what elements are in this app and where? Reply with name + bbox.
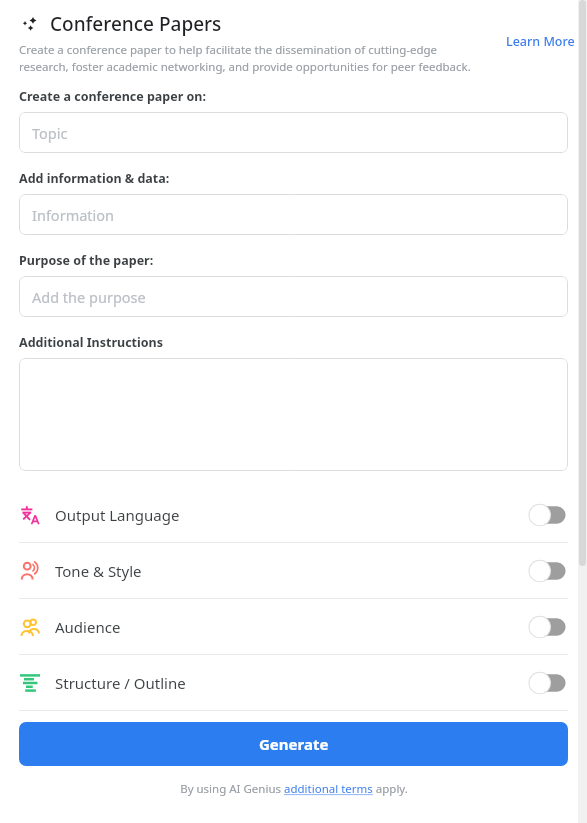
- staticText: Information: [32, 205, 115, 225]
- staticText: Create a conference paper on:: [19, 88, 207, 105]
- button[interactable]: Tone & Style: [0, 543, 587, 598]
- staticText: Topic: [32, 123, 68, 143]
- staticText: Tone & Style: [55, 561, 142, 581]
- button[interactable]: Audience: [0, 599, 587, 654]
- staticText: Purpose of the paper:: [19, 252, 154, 269]
- staticText: Additional Instructions: [19, 334, 163, 351]
- staticText: Output Language: [55, 505, 180, 525]
- button[interactable]: Information: [19, 194, 568, 235]
- button[interactable]: [19, 358, 568, 471]
- button[interactable]: Topic: [19, 112, 568, 153]
- staticText: Learn More: [506, 33, 575, 50]
- button[interactable]: Toggle: [528, 559, 568, 583]
- staticText: Audience: [55, 617, 121, 637]
- staticText: Conference Papers: [50, 11, 222, 37]
- staticText: By using AI Genius additional terms appl…: [180, 781, 408, 797]
- staticText: Generate: [259, 734, 329, 754]
- staticText: Add the purpose: [32, 287, 146, 307]
- button[interactable]: Structure / Outline: [0, 655, 587, 710]
- button[interactable]: Toggle: [528, 615, 568, 639]
- button[interactable]: Output Language: [0, 487, 587, 542]
- staticText: Create a conference paper to help facili…: [19, 42, 487, 74]
- button[interactable]: Learn More: [504, 31, 577, 52]
- staticText: Structure / Outline: [55, 673, 186, 693]
- button[interactable]: Add the purpose: [19, 276, 568, 317]
- button[interactable]: By using AI Genius additional terms appl…: [178, 779, 410, 799]
- button[interactable]: Generate: [19, 722, 568, 766]
- staticText: Add information & data:: [19, 170, 170, 187]
- button[interactable]: Toggle: [528, 671, 568, 695]
- button[interactable]: Toggle: [528, 503, 568, 527]
